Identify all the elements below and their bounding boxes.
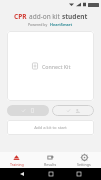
staticText: add-on kit — [29, 12, 60, 21]
staticText: Settings — [77, 162, 91, 167]
staticText: Add a kit to start — [34, 125, 67, 131]
staticText: Connect Kit — [42, 63, 71, 70]
button[interactable]: Recents — [73, 168, 85, 180]
button[interactable]: Add a kit to start — [7, 120, 94, 135]
staticText: Results — [44, 162, 57, 167]
button[interactable]: Training — [0, 152, 33, 168]
staticText: HeartSmart — [50, 22, 73, 27]
button[interactable]: Kit checklist — [7, 105, 49, 116]
button[interactable]: Home — [45, 168, 57, 180]
staticText: Powered by — [28, 22, 48, 27]
staticText: CPR — [14, 12, 27, 21]
button[interactable]: Connect Kit — [7, 31, 94, 101]
staticText: Training — [10, 162, 24, 167]
button[interactable]: Results — [33, 152, 67, 168]
button[interactable]: Settings — [67, 152, 101, 168]
button[interactable]: Manikin checklist — [52, 105, 94, 116]
staticText: student — [62, 12, 88, 21]
button[interactable]: Back — [16, 168, 28, 180]
